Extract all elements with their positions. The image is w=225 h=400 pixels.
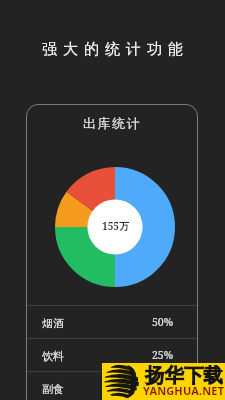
staticText: 25% <box>152 348 174 362</box>
button[interactable]: 副食 <box>26 372 198 400</box>
staticText: 50% <box>152 315 174 329</box>
staticText: 副食 <box>42 382 64 396</box>
staticText: 饮料 <box>42 349 64 363</box>
staticText: 强大的统计功能 <box>39 40 186 59</box>
button[interactable]: 饮料 <box>26 339 198 371</box>
staticText: 155万 <box>102 219 129 233</box>
staticText: 出库统计 <box>83 115 142 131</box>
staticText: YANGHUA.NET <box>143 383 225 398</box>
staticText: 烟酒 <box>42 316 64 330</box>
button[interactable]: 烟酒 <box>26 306 198 338</box>
staticText: 10% <box>152 381 174 395</box>
staticText: 扬华下载 <box>145 363 225 388</box>
